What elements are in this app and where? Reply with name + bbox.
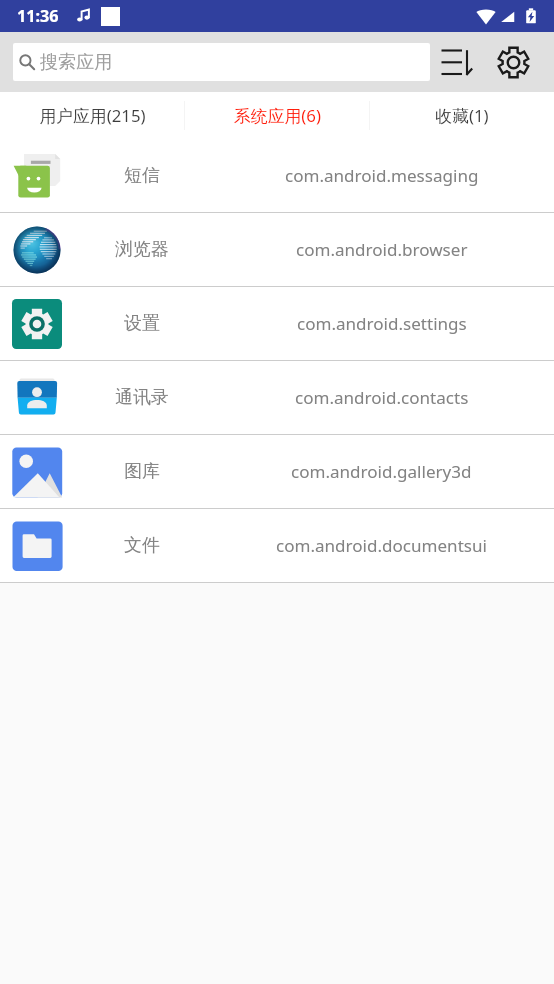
button[interactable]: 收藏(1) <box>370 92 554 139</box>
staticText: com.android.browser <box>296 238 468 261</box>
staticText: com.android.messaging <box>285 164 479 187</box>
staticText: 短信 <box>124 164 160 187</box>
button[interactable]: 文件 <box>0 509 554 582</box>
button[interactable]: Settings <box>491 40 535 84</box>
staticText: 文件 <box>124 534 160 557</box>
staticText: com.android.contacts <box>295 386 469 409</box>
staticText: 搜索应用 <box>40 51 113 74</box>
staticText: 浏览器 <box>115 238 169 261</box>
staticText: 设置 <box>124 312 160 335</box>
button[interactable]: 搜索应用 <box>13 43 430 81</box>
button[interactable]: 系统应用(6) <box>185 92 369 139</box>
staticText: 系统应用(6) <box>234 104 321 127</box>
button[interactable]: 通讯录 <box>0 361 554 434</box>
button[interactable]: 图库 <box>0 435 554 508</box>
button[interactable]: 浏览器 <box>0 213 554 286</box>
button[interactable]: 设置 <box>0 287 554 360</box>
staticText: 通讯录 <box>115 386 169 409</box>
button[interactable]: 短信 <box>0 139 554 212</box>
button[interactable]: 用户应用(215) <box>0 92 184 139</box>
button[interactable]: Sort <box>434 40 478 84</box>
staticText: com.android.settings <box>297 312 467 335</box>
staticText: 用户应用(215) <box>39 104 146 127</box>
staticText: com.android.gallery3d <box>291 460 472 483</box>
staticText: 11:36 <box>17 5 59 27</box>
staticText: com.android.documentsui <box>276 534 487 557</box>
staticText: 收藏(1) <box>435 104 489 127</box>
staticText: 图库 <box>124 460 160 483</box>
